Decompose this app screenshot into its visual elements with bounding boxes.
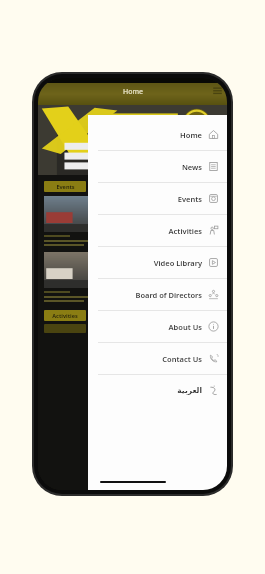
button[interactable]: Open menu [212,85,223,96]
button[interactable]: Activities [44,310,86,321]
button[interactable]: Contact Us [88,343,227,374]
staticText: Events [56,183,75,190]
button[interactable] [44,196,88,232]
staticText: Board of Directors [135,290,202,300]
staticText: Contact Us [162,354,202,364]
staticText: News [181,162,202,172]
staticText: Events [177,194,202,204]
staticText: العربية [177,386,202,395]
button[interactable]: Activities [88,215,227,246]
staticText: About Us [168,322,202,332]
button[interactable]: News [88,151,227,182]
button[interactable]: About Us [88,311,227,342]
staticText: Home [180,130,202,140]
button[interactable]: Video Library [88,247,227,278]
staticText: Home [123,87,143,97]
staticText: Video Library [153,258,202,268]
staticText: Activities [52,312,78,319]
button[interactable]: Events [44,181,86,192]
button[interactable] [44,252,88,288]
button[interactable]: Events [88,183,227,214]
button[interactable]: العربية [88,375,227,406]
staticText: Activities [168,226,202,236]
button[interactable]: Board of Directors [88,279,227,310]
button[interactable]: Home [88,119,227,150]
